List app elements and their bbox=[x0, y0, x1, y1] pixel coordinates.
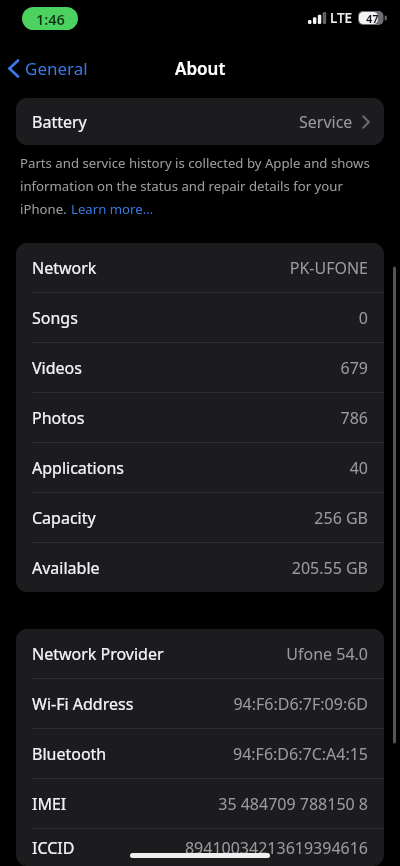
staticText: ICCID bbox=[32, 837, 75, 859]
button[interactable]: General bbox=[0, 51, 98, 86]
button[interactable]: Photos bbox=[16, 393, 384, 442]
staticText: 0 bbox=[358, 307, 368, 329]
staticText: 35 484709 788150 8 bbox=[218, 793, 368, 815]
staticText: information on the status and repair det… bbox=[20, 177, 343, 195]
button[interactable]: Learn more… bbox=[71, 200, 154, 218]
staticText: Network Provider bbox=[32, 643, 164, 665]
button[interactable]: Wi-Fi Address bbox=[16, 679, 384, 728]
staticText: LTE bbox=[330, 9, 353, 27]
staticText: Wi-Fi Address bbox=[32, 693, 134, 715]
other: Open battery service details bbox=[362, 115, 370, 129]
button[interactable]: ICCID bbox=[16, 829, 384, 866]
staticText: IMEI bbox=[32, 793, 67, 815]
staticText: 89410034213619394616 bbox=[184, 837, 368, 859]
staticText: Applications bbox=[32, 457, 124, 479]
staticText: General bbox=[25, 57, 88, 80]
button[interactable]: Network Provider bbox=[16, 629, 384, 678]
staticText: Photos bbox=[32, 407, 85, 429]
staticText: Learn more… bbox=[71, 200, 154, 218]
button[interactable]: Songs bbox=[16, 293, 384, 342]
staticText: 679 bbox=[340, 357, 368, 379]
staticText: Network bbox=[32, 257, 97, 279]
staticText: Songs bbox=[32, 307, 78, 329]
staticText: 786 bbox=[340, 407, 368, 429]
staticText: Capacity bbox=[32, 507, 96, 529]
staticText: Parts and service history is collected b… bbox=[20, 154, 370, 172]
staticText: Ufone 54.0 bbox=[286, 643, 368, 665]
staticText: Battery bbox=[32, 111, 87, 133]
button[interactable]: Battery bbox=[16, 98, 384, 145]
staticText: About bbox=[175, 57, 226, 80]
button[interactable]: Applications bbox=[16, 443, 384, 492]
staticText: Videos bbox=[32, 357, 82, 379]
staticText: 256 GB bbox=[314, 507, 368, 529]
staticText: 94:F6:D6:7C:A4:15 bbox=[233, 743, 368, 765]
staticText: Available bbox=[32, 557, 100, 579]
staticText: Bluetooth bbox=[32, 743, 107, 765]
button[interactable]: Available bbox=[16, 543, 384, 592]
staticText: 1:46 bbox=[36, 9, 65, 29]
button[interactable]: Videos bbox=[16, 343, 384, 392]
button[interactable]: Bluetooth bbox=[16, 729, 384, 778]
button[interactable]: Network bbox=[16, 243, 384, 292]
staticText: Service bbox=[299, 111, 353, 133]
button[interactable]: IMEI bbox=[16, 779, 384, 828]
staticText: 94:F6:D6:7F:09:6D bbox=[233, 693, 368, 715]
staticText: PK-UFONE bbox=[289, 257, 368, 279]
button[interactable]: Capacity bbox=[16, 493, 384, 542]
staticText: 205.55 GB bbox=[291, 557, 368, 579]
staticText: iPhone. bbox=[20, 200, 71, 218]
staticText: 47 bbox=[366, 11, 379, 26]
staticText: 40 bbox=[349, 457, 368, 479]
